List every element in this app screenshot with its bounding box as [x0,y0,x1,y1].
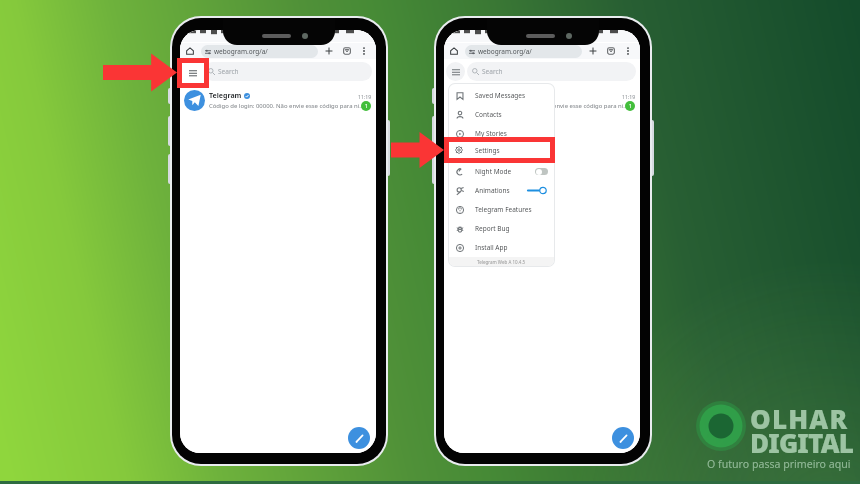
button[interactable]: Tabs [605,45,617,57]
button[interactable]: webogram.org/a/ [201,45,318,58]
button[interactable]: Night Mode [449,162,554,181]
staticText: webogram.org/a/ [214,47,268,56]
button[interactable]: New tab [587,45,599,57]
button[interactable]: Menu [182,62,201,81]
button[interactable]: Tabs [341,45,353,57]
button[interactable]: Telegram [180,87,376,113]
staticText: OLHAR [750,401,849,436]
button[interactable]: Menu [446,62,465,81]
staticText: Código de login: 00000. Não envie esse c… [209,102,365,110]
button[interactable]: Settings [449,143,554,162]
staticText: Saved Messages [475,91,526,100]
staticText: Night Mode [475,167,512,176]
button[interactable]: More options [358,45,370,57]
staticText: O futuro passa primeiro aqui [707,457,851,471]
button[interactable]: Contacts [449,105,554,124]
button[interactable]: My Stories [449,124,554,143]
staticText: webogram.org/a/ [478,47,532,56]
staticText: Telegram Web A 10.4.5 [477,259,526,265]
staticText: 11:19 [358,93,372,100]
button[interactable]: Home [184,45,196,57]
button[interactable]: More options [622,45,634,57]
staticText: Settings [475,148,500,157]
staticText: 1 [629,103,632,110]
button[interactable]: Telegram Features [449,200,554,219]
button[interactable]: Telegram [444,87,640,113]
button[interactable]: webogram.org/a/ [465,45,582,58]
staticText: Telegram [209,91,242,101]
button[interactable]: Install App [449,238,554,257]
staticText: DIGITAL [750,425,854,460]
staticText: Código de login: 00000. Não envie esse c… [473,102,629,110]
staticText: Settings [475,146,500,155]
staticText: My Stories [475,129,507,138]
button[interactable]: Report Bug [449,219,554,238]
button[interactable]: Search [467,62,636,81]
staticText: Install App [475,243,508,252]
staticText: Search [482,67,503,76]
button[interactable]: Saved Messages [449,86,554,105]
button[interactable]: Animations [449,181,554,200]
button[interactable]: New message [612,427,634,449]
button[interactable]: New message [348,427,370,449]
staticText: Telegram [473,91,506,101]
button[interactable]: Settings [449,142,551,159]
staticText: Telegram Features [475,205,532,214]
staticText: Contacts [475,110,502,119]
button[interactable]: Search [203,62,372,81]
staticText: 1 [365,103,368,110]
staticText: 11:19 [622,93,636,100]
staticText: Search [218,67,239,76]
button[interactable]: Open menu [182,63,204,83]
button[interactable]: Home [448,45,460,57]
button[interactable]: New tab [323,45,335,57]
staticText: Animations [475,186,510,195]
staticText: Report Bug [475,224,510,233]
